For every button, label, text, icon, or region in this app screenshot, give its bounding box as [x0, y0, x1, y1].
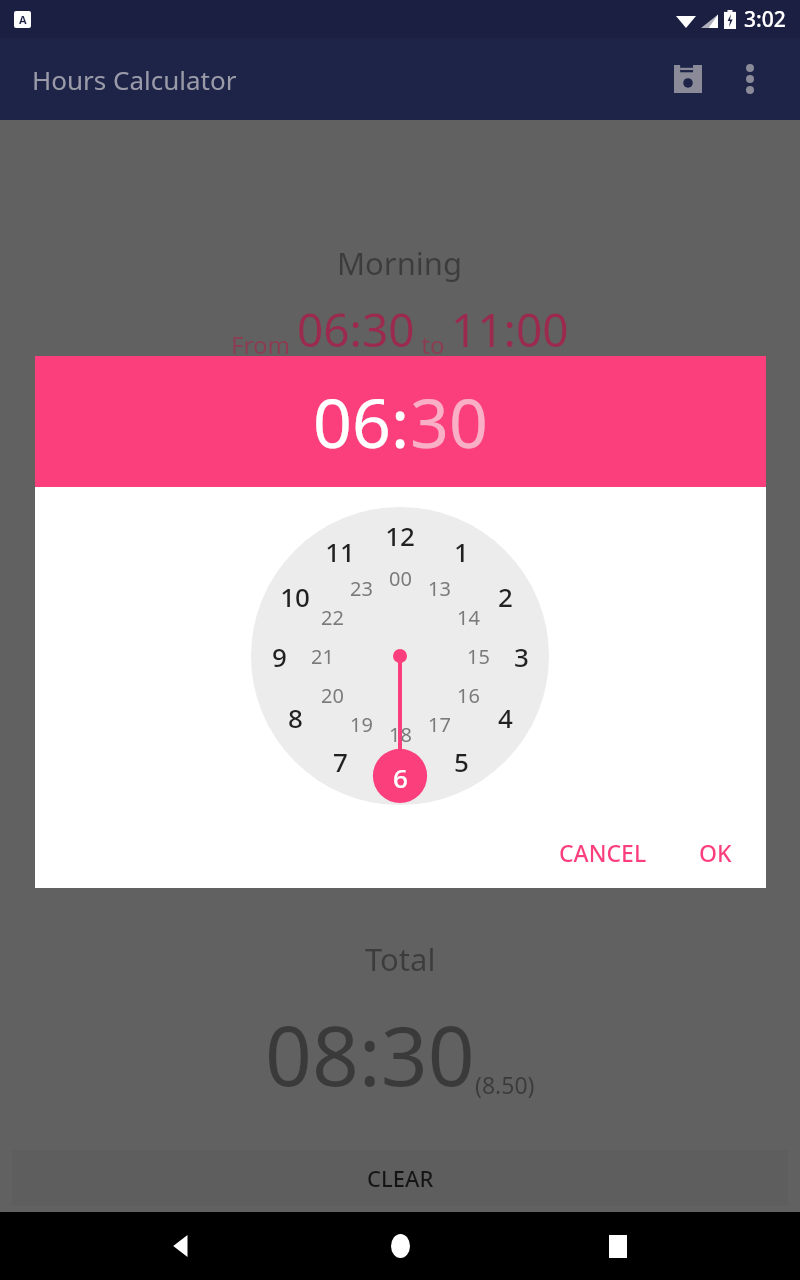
staticText: CANCEL [559, 837, 647, 868]
button[interactable] [251, 507, 549, 805]
button[interactable]: CLEAR [12, 1150, 788, 1206]
staticText: 5 [454, 744, 469, 779]
staticText: 23 [350, 575, 373, 602]
staticText: 7 [333, 744, 348, 779]
button[interactable]: 30 [410, 375, 488, 468]
button[interactable]: OK [683, 827, 748, 878]
staticText: 18 [389, 721, 412, 748]
button[interactable]: Home [364, 1212, 436, 1280]
staticText: 22 [321, 604, 344, 631]
staticText: 20 [321, 682, 344, 709]
button[interactable]: Back [146, 1212, 218, 1280]
staticText: Morning [337, 242, 463, 284]
staticText: 00 [389, 565, 412, 592]
staticText: 12 [385, 518, 415, 553]
staticText: 9 [272, 639, 287, 674]
staticText: 10 [280, 579, 310, 614]
staticText: 13 [428, 575, 451, 602]
staticText: A [19, 12, 27, 27]
staticText: CLEAR [367, 1163, 434, 1193]
staticText: 15 [467, 643, 490, 670]
staticText: 4 [498, 700, 513, 735]
staticText: Hours Calculator [32, 62, 237, 97]
staticText: 06:30 [297, 298, 415, 361]
button[interactable]: Save [660, 51, 716, 107]
staticText: 21 [311, 643, 334, 670]
staticText: OK [699, 837, 732, 868]
staticText: 08:30 [265, 998, 475, 1110]
staticText: 06 [313, 375, 391, 468]
staticText: 16 [457, 682, 480, 709]
staticText: 14 [457, 604, 480, 631]
staticText: 17 [428, 711, 451, 738]
button[interactable]: More options [722, 51, 778, 107]
staticText: From [231, 328, 297, 361]
staticText: (8.50) [475, 1069, 535, 1100]
staticText: 11 [325, 534, 355, 569]
staticText: 19 [350, 711, 373, 738]
staticText: 3 [514, 639, 529, 674]
button[interactable]: 06 [313, 375, 391, 468]
staticText: to [415, 328, 451, 361]
staticText: Total [365, 938, 436, 980]
staticText: : [391, 375, 410, 468]
staticText: 8 [288, 700, 303, 735]
button[interactable]: Recents [582, 1212, 654, 1280]
button[interactable]: CANCEL [543, 827, 663, 878]
staticText: 2 [498, 579, 513, 614]
staticText: 11:00 [451, 298, 569, 361]
staticText: 1 [454, 534, 469, 569]
staticText: 3:02 [744, 5, 786, 34]
staticText: 6 [393, 760, 408, 795]
staticText: 30 [410, 375, 488, 468]
